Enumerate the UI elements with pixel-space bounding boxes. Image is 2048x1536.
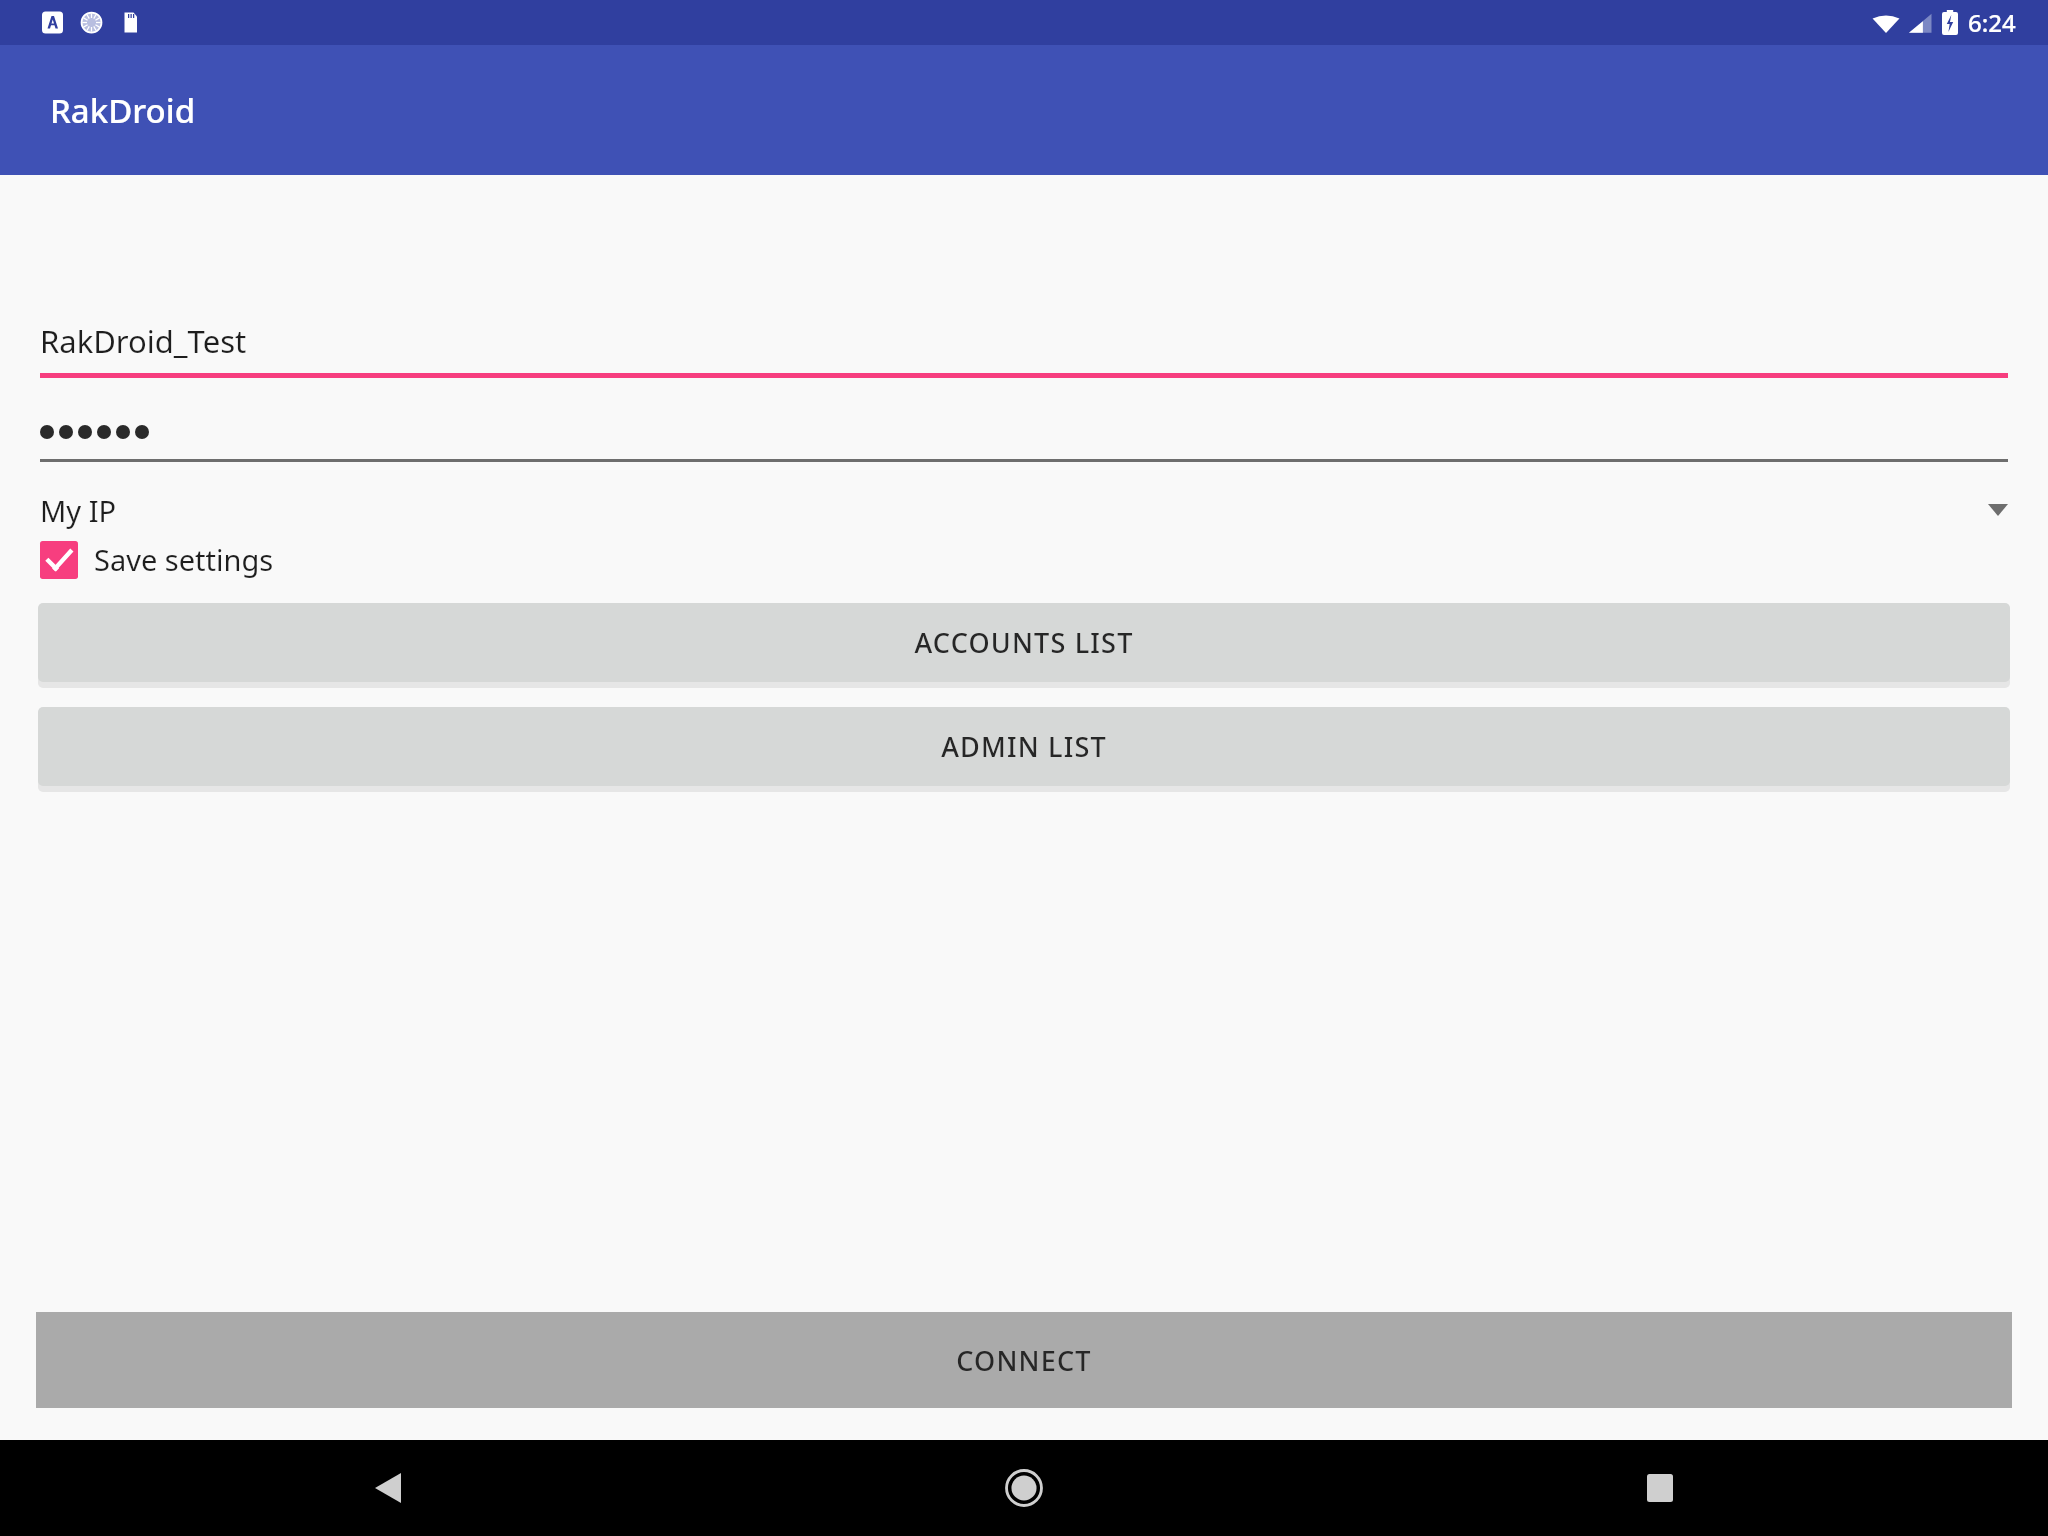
button[interactable]: Home (988, 1452, 1060, 1524)
button[interactable]: Save settings (40, 540, 274, 579)
button[interactable]: RakDroid_Test (40, 320, 2008, 378)
staticText: RakDroid_Test (40, 320, 247, 362)
button[interactable] (40, 425, 2008, 462)
button[interactable]: ADMIN LIST (38, 707, 2010, 786)
button[interactable]: My IP (40, 484, 2008, 536)
staticText: 6:24 (1968, 6, 2016, 39)
staticText: ACCOUNTS LIST (914, 624, 1134, 661)
button[interactable]: ACCOUNTS LIST (38, 603, 2010, 682)
staticText: Save settings (94, 540, 274, 579)
staticText: ADMIN LIST (941, 728, 1107, 765)
staticText: RakDroid (50, 88, 196, 133)
button[interactable]: CONNECT (36, 1312, 2012, 1408)
button[interactable]: Back (352, 1452, 424, 1524)
staticText: My IP (40, 491, 117, 530)
staticText: CONNECT (956, 1342, 1092, 1379)
button[interactable]: Recent apps (1624, 1452, 1696, 1524)
